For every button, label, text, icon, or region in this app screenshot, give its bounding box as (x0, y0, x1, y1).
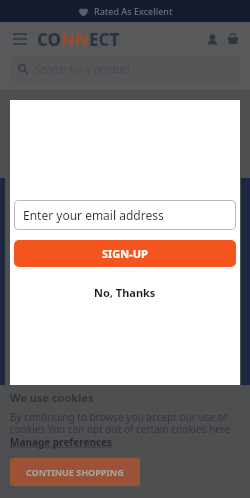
button[interactable]: Menu (9, 28, 31, 50)
staticText: Search for a product (35, 62, 131, 76)
staticText: SIGN-UP (102, 246, 148, 261)
staticText: Enter your email address (23, 207, 164, 223)
staticText: We use cookies (10, 390, 94, 405)
staticText: No, Thanks (94, 285, 156, 300)
button[interactable]: CONNECT (37, 28, 120, 51)
button[interactable]: Basket (223, 29, 243, 49)
staticText: By continuing to browse you accept our u… (10, 410, 240, 449)
button[interactable]: SIGN-UP (14, 240, 236, 267)
staticText: CONTINUE SHOPPING (26, 466, 124, 478)
button[interactable]: CONTINUE SHOPPING (10, 458, 140, 486)
button[interactable]: Enter your email address (14, 200, 236, 230)
staticText: CONNECT (37, 28, 120, 51)
button[interactable]: Account (202, 29, 222, 49)
staticText: Rated As Excellent (94, 5, 173, 17)
button[interactable]: No, Thanks (10, 282, 240, 302)
